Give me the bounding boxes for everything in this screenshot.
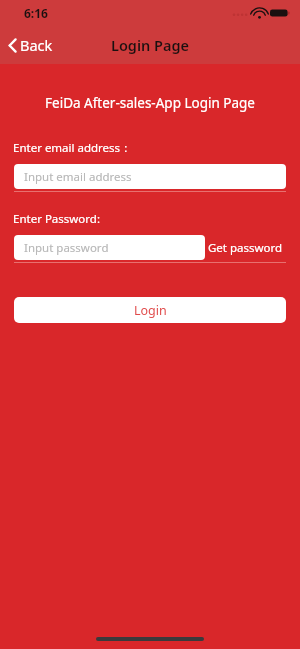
button[interactable]: Input email address <box>14 164 286 189</box>
staticText: Back <box>20 35 53 55</box>
button[interactable]: Login <box>14 297 286 323</box>
staticText: FeiDa After-sales-App Login Page <box>0 94 300 112</box>
staticText: Enter email address： <box>13 140 132 156</box>
button[interactable]: Input password <box>14 235 205 260</box>
staticText: Input email address <box>24 169 132 185</box>
staticText: Login Page <box>111 35 190 55</box>
staticText: Enter Password: <box>13 211 100 227</box>
staticText: 6:16 <box>24 5 48 21</box>
button[interactable]: Back <box>0 29 65 61</box>
other: Home indicator <box>96 637 204 641</box>
staticText: Login <box>134 302 167 319</box>
staticText: Get password <box>208 240 283 256</box>
button[interactable]: Get password <box>205 235 286 260</box>
staticText: Input password <box>24 240 109 256</box>
